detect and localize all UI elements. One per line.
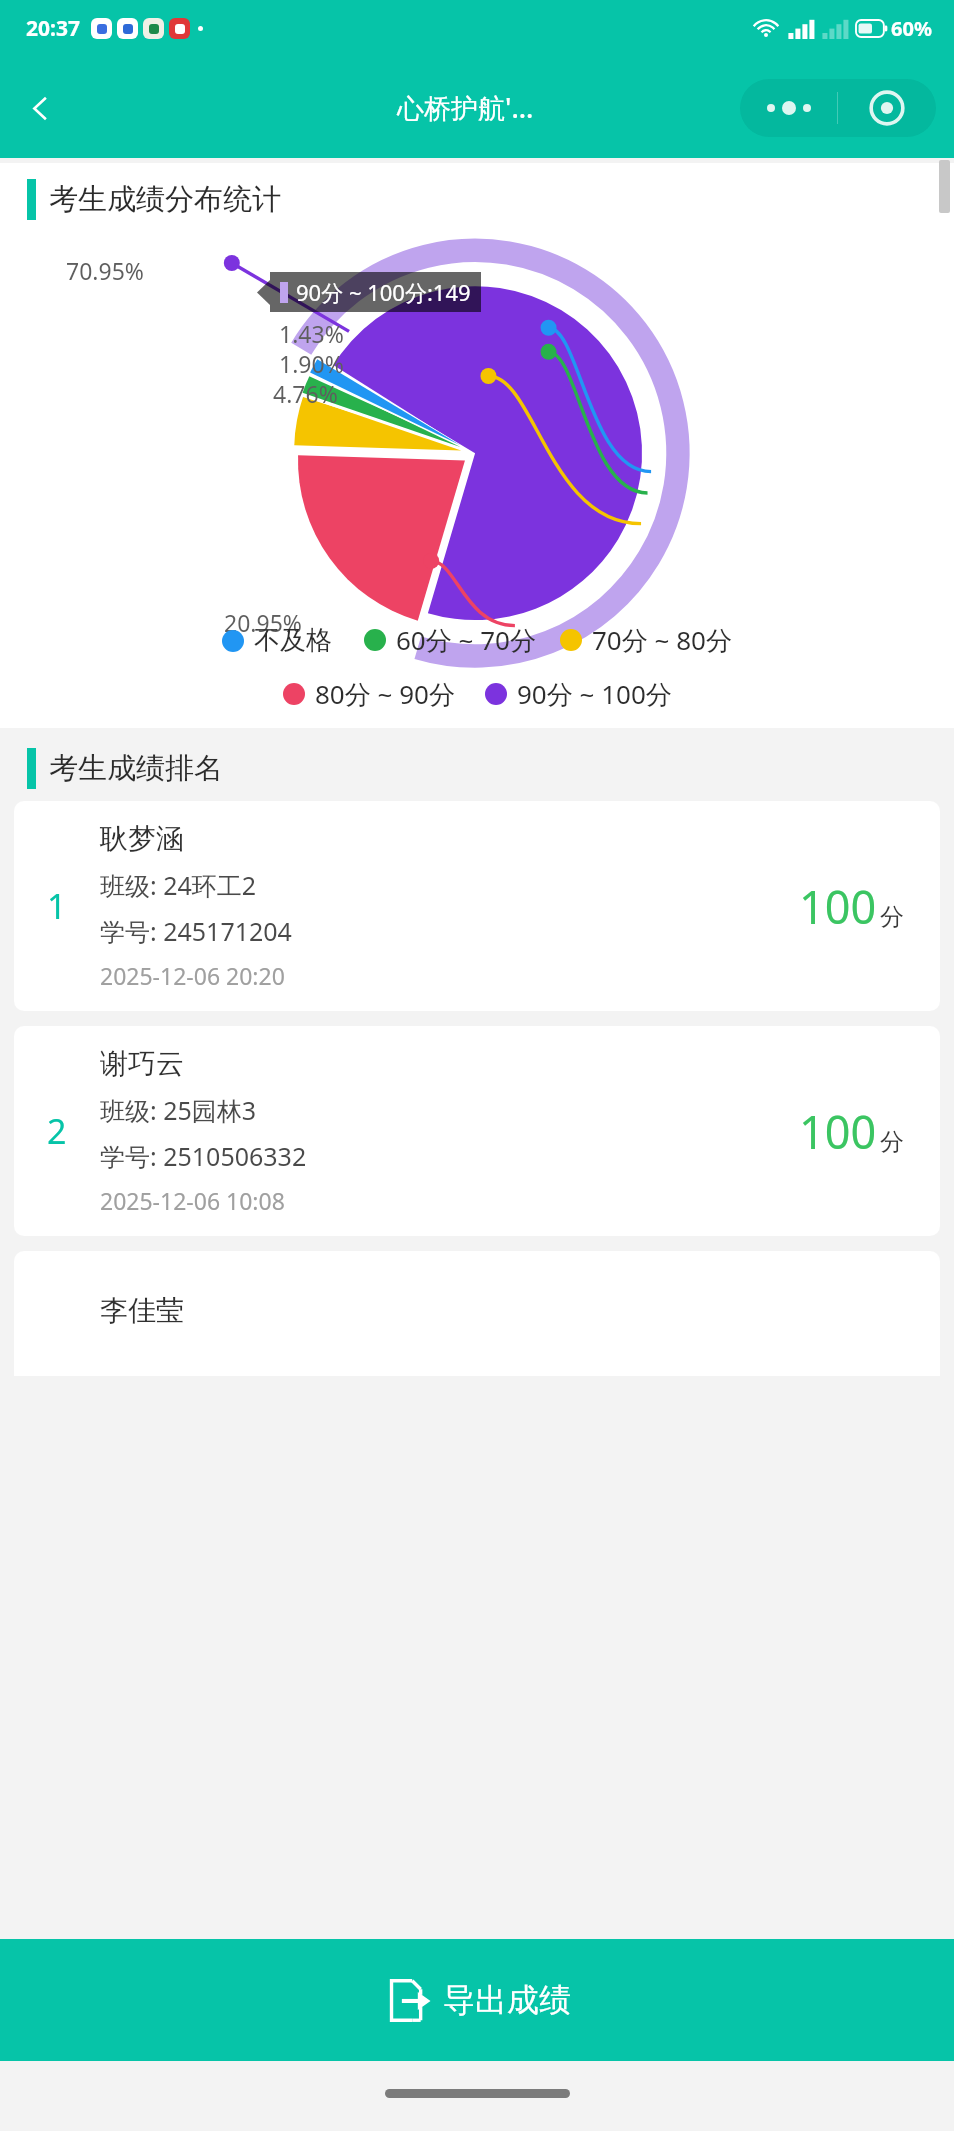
staticText: 李佳莹 (100, 1293, 184, 1328)
staticText: 70.95% (66, 255, 144, 286)
button[interactable]: 1 (14, 801, 940, 1011)
staticText: 班级: 24环工2 (100, 868, 257, 902)
staticText: 2025-12-06 20:20 (100, 960, 285, 991)
staticText: 1 (47, 883, 67, 929)
button[interactable]: 不及格 (222, 624, 332, 657)
staticText: 心桥护航'... (397, 89, 534, 126)
staticText: 100 (799, 1101, 877, 1162)
staticText: 学号: 245171204 (100, 914, 292, 948)
staticText: 不及格 (254, 624, 332, 657)
staticText: 1.90% (279, 348, 344, 379)
button[interactable]: 返回 (12, 80, 68, 136)
button[interactable]: 李佳莹 (14, 1251, 940, 1376)
staticText: 2 (47, 1108, 67, 1154)
staticText: 70分 ~ 80分 (592, 622, 732, 658)
staticText: 学号: 2510506332 (100, 1139, 307, 1173)
staticText: 考生成绩分布统计 (49, 181, 281, 218)
staticText: 班级: 25园林3 (100, 1093, 257, 1127)
staticText: 1.43% (279, 318, 344, 349)
button[interactable]: 2 (14, 1026, 940, 1236)
staticText: 分 (880, 902, 904, 932)
button[interactable]: 60分 ~ 70分 (364, 622, 536, 658)
button[interactable]: 80分 ~ 90分 (283, 676, 455, 712)
staticText: 20.95% (224, 607, 302, 638)
staticText: 90分 ~ 100分 (517, 676, 672, 712)
staticText: 耿梦涵 (100, 821, 184, 856)
staticText: 20:37 (26, 14, 80, 43)
button[interactable]: 90分 ~ 100分 (485, 676, 672, 712)
staticText: 2025-12-06 10:08 (100, 1185, 285, 1216)
staticText: 60分 ~ 70分 (396, 622, 536, 658)
staticText: 4.76% (273, 378, 338, 409)
button[interactable]: 更多 (740, 79, 837, 137)
staticText: 100 (799, 876, 877, 937)
button[interactable]: 70分 ~ 80分 (560, 622, 732, 658)
button[interactable]: 导出成绩 (0, 1939, 954, 2061)
staticText: 分 (880, 1127, 904, 1157)
staticText: 导出成绩 (443, 1980, 571, 2020)
staticText: 谢巧云 (100, 1046, 184, 1081)
staticText: 考生成绩排名 (49, 750, 223, 787)
staticText: 60% (891, 15, 932, 42)
staticText: 80分 ~ 90分 (315, 676, 455, 712)
button[interactable]: 关闭 (838, 79, 936, 137)
staticText: 90分 ~ 100分:149 (296, 277, 471, 307)
